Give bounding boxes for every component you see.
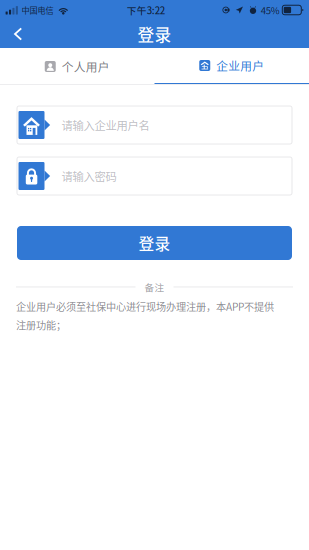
staticText: 企业用户必须至社保中心进行现场办理注册，本APP不提供 bbox=[16, 299, 274, 314]
staticText: 企业用户 bbox=[216, 57, 264, 74]
staticText: 个人用户 bbox=[62, 58, 110, 75]
button[interactable]: 登录 bbox=[17, 226, 292, 260]
staticText: 注册功能； bbox=[16, 318, 66, 332]
staticText: 登录 bbox=[138, 232, 170, 254]
staticText: 请输入密码 bbox=[61, 168, 116, 184]
staticText: 中国电信 bbox=[21, 4, 53, 16]
staticText: 45% bbox=[261, 3, 280, 17]
staticText: 备注 bbox=[144, 280, 164, 294]
button[interactable]: 企业用户 bbox=[154, 48, 309, 85]
button[interactable]: Back bbox=[0, 20, 50, 48]
button[interactable]: 个人用户 bbox=[0, 48, 154, 85]
staticText: 登录 bbox=[137, 22, 171, 46]
staticText: 请输入企业用户名 bbox=[61, 117, 149, 133]
staticText: 下午3:22 bbox=[127, 3, 165, 17]
